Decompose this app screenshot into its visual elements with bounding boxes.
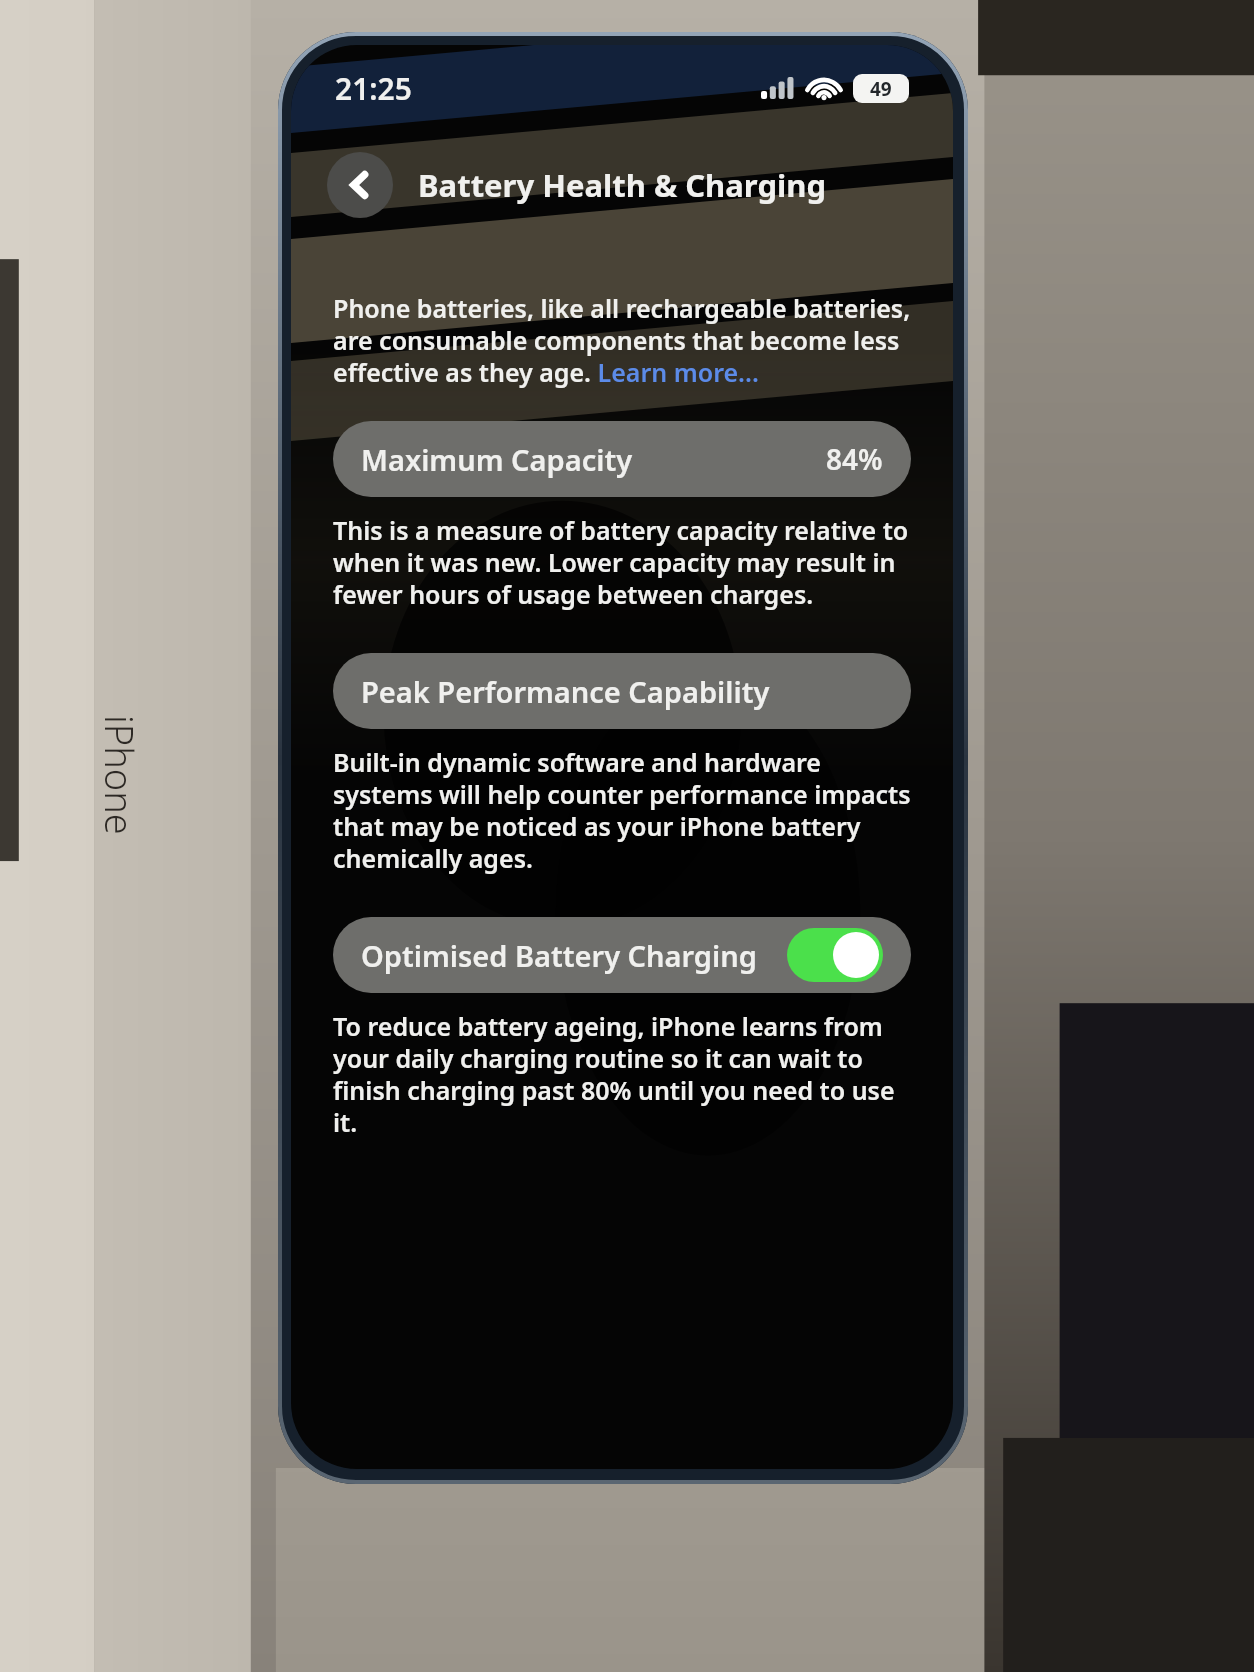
staticText: Battery Health & Charging	[418, 164, 826, 206]
staticText: 21:25	[335, 68, 412, 109]
staticText: 84%	[826, 440, 883, 478]
staticText: iPhone	[94, 715, 146, 835]
button[interactable]: Peak Performance Capability	[333, 653, 911, 729]
staticText: Maximum Capacity	[361, 440, 633, 479]
staticText: 49	[870, 76, 892, 102]
staticText: Peak Performance Capability	[361, 672, 770, 711]
button[interactable]: Optimised Battery Charging, on	[787, 928, 883, 982]
button[interactable]: Maximum Capacity	[333, 421, 911, 497]
button[interactable]: Optimised Battery Charging	[333, 917, 911, 993]
staticText: To reduce battery ageing, iPhone learns …	[333, 1009, 911, 1139]
staticText: This is a measure of battery capacity re…	[333, 513, 911, 611]
staticText: Built-in dynamic software and hardware s…	[333, 745, 911, 875]
staticText: Phone batteries, like all rechargeable b…	[333, 291, 911, 389]
staticText: Optimised Battery Charging	[361, 936, 757, 975]
button[interactable]: Back	[327, 152, 393, 218]
